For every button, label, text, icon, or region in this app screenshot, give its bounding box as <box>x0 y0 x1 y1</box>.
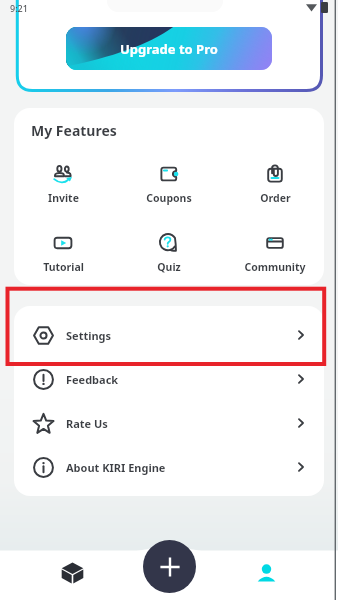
button[interactable]: Invite <box>15 164 111 205</box>
button[interactable]: Quiz <box>121 233 217 274</box>
staticText: 9:21 <box>10 2 28 14</box>
button[interactable]: Coupons <box>121 164 217 205</box>
staticText: Settings <box>66 328 112 343</box>
staticText: Feedback <box>66 372 119 387</box>
staticText: Tutorial <box>43 260 84 274</box>
button[interactable]: Upgrade to Pro <box>66 27 272 70</box>
button[interactable]: About KIRI Engine <box>14 445 324 489</box>
button[interactable]: Tutorial <box>15 233 111 274</box>
button[interactable]: Profile <box>242 549 290 597</box>
button[interactable]: Order <box>227 164 323 205</box>
staticText: Order <box>260 191 291 205</box>
button[interactable]: Settings <box>14 313 324 357</box>
staticText: Invite <box>48 191 79 205</box>
staticText: Coupons <box>146 191 192 205</box>
staticText: Community <box>244 260 306 274</box>
staticText: About KIRI Engine <box>66 460 166 475</box>
button[interactable]: Community <box>227 233 323 274</box>
button[interactable]: Create new <box>143 540 196 593</box>
button[interactable]: Feedback <box>14 357 324 401</box>
staticText: Upgrade to Pro <box>120 40 218 58</box>
staticText: Quiz <box>157 260 181 274</box>
staticText: My Features <box>31 121 117 140</box>
button[interactable]: Rate Us <box>14 401 324 445</box>
staticText: Rate Us <box>66 416 108 431</box>
button[interactable]: My models <box>48 548 96 596</box>
